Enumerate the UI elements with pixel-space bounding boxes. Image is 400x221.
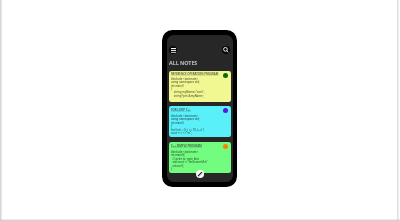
staticText: for (int i = 0; i <= 10; i++) {	[171, 128, 227, 132]
button[interactable]: New note	[196, 170, 204, 178]
staticText: return 0;	[171, 164, 227, 168]
staticText: {	[171, 87, 227, 91]
staticText: int main(){	[171, 153, 227, 157]
staticText: #include <iostream>	[171, 114, 227, 118]
staticText: std::cout <<"hello world\n"	[171, 160, 227, 164]
staticText: }	[171, 167, 227, 171]
staticText: {	[171, 124, 227, 128]
staticText: string myName="sam";	[171, 90, 227, 94]
button[interactable]: Menu	[169, 46, 177, 54]
staticText: int main()	[171, 121, 227, 125]
button[interactable]: FOR LOOP C++	[169, 106, 231, 137]
button[interactable]: C++ SIMPLE PROGRAM	[169, 142, 231, 173]
staticText: REFERENCE OPERATORS PROGRAM C++	[171, 72, 221, 76]
button[interactable]: REFERENCE OPERATORS PROGRAM C++	[169, 71, 231, 102]
staticText: using namespace std;	[171, 80, 227, 84]
staticText: int main()	[171, 84, 227, 88]
staticText: C++ SIMPLE PROGRAM	[171, 144, 221, 148]
staticText: FOR LOOP C++	[171, 108, 221, 112]
staticText: string*ptr=&myName;	[171, 94, 227, 98]
staticText: #include <iostream>	[171, 77, 227, 81]
button[interactable]: Search	[222, 46, 230, 54]
staticText: cout << i <<"\n";	[171, 131, 227, 135]
staticText: using namespace std;	[171, 117, 227, 121]
staticText: #include <iostream>	[171, 150, 227, 154]
staticText: // write to note face	[171, 157, 227, 161]
staticText: ALL NOTES	[169, 59, 198, 66]
